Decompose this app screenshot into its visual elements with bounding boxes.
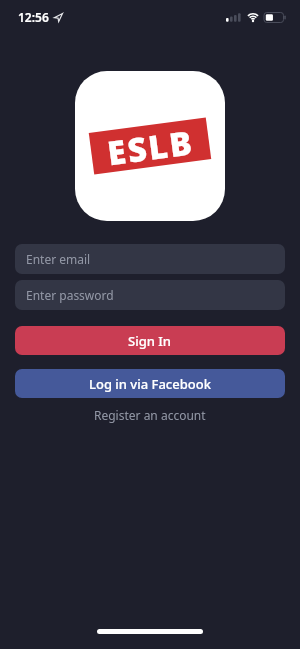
button[interactable]: Enter password xyxy=(15,280,285,310)
staticText: 12:56 xyxy=(18,9,49,25)
staticText: Enter email xyxy=(26,251,91,267)
staticText: ESLB xyxy=(105,119,196,172)
staticText: Enter password xyxy=(26,287,114,303)
button[interactable]: Enter email xyxy=(15,244,285,274)
staticText: Register an account xyxy=(94,407,206,423)
button[interactable]: Log in via Facebook xyxy=(15,369,285,398)
button[interactable]: Register an account xyxy=(94,407,206,423)
staticText: Log in via Facebook xyxy=(89,375,211,393)
button[interactable]: Sign In xyxy=(15,326,285,355)
staticText: Sign In xyxy=(128,332,172,350)
